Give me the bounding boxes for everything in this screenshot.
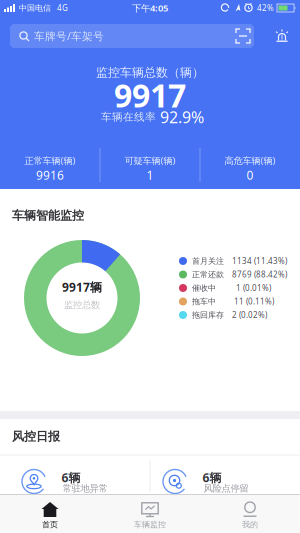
button[interactable]: 6辆 (0, 444, 150, 494)
staticText: 正常车辆(辆) (24, 154, 75, 167)
button[interactable]: 6辆 (150, 444, 300, 494)
staticText: 拖车中 (192, 297, 216, 306)
staticText: 高危车辆(辆) (224, 154, 275, 167)
button[interactable]: 车牌号/车架号 (10, 24, 254, 48)
staticText: 首页 (42, 520, 58, 529)
button[interactable]: 报警消息 (269, 24, 295, 48)
staticText: 车牌号/车架号 (34, 29, 104, 43)
button[interactable]: 扫一扫 (231, 24, 255, 48)
staticText: 1134 (11.43%) (232, 256, 287, 266)
staticText: 拖回库存 (192, 310, 224, 320)
staticText: 9916 (36, 167, 64, 183)
button[interactable]: 我的 (200, 494, 300, 533)
staticText: 下午4:05 (132, 2, 168, 14)
staticText: 1 (146, 167, 153, 183)
staticText: 4G (57, 3, 68, 13)
staticText: 车辆监控 (134, 520, 166, 529)
staticText: 1 (0.01%) (232, 283, 271, 293)
staticText: 正常还款 (192, 270, 224, 279)
staticText: 车辆在线率 (101, 110, 156, 123)
button[interactable]: 首页 (0, 494, 100, 533)
staticText: 中国电信 (19, 3, 51, 13)
staticText: 6辆 (202, 469, 221, 485)
staticText: 92.9% (160, 106, 204, 128)
staticText: 监控总数 (64, 299, 100, 311)
staticText: 9917 (114, 74, 186, 116)
staticText: 催收中 (192, 283, 216, 293)
staticText: 风控日报 (12, 429, 60, 444)
staticText: 车辆智能监控 (12, 208, 84, 223)
staticText: 42% (257, 3, 274, 13)
staticText: 可疑车辆(辆) (124, 154, 175, 167)
staticText: 风险点停留 (203, 483, 248, 494)
staticText: 0 (246, 167, 253, 183)
staticText: 6辆 (61, 469, 80, 485)
staticText: 2 (0.02%) (232, 310, 267, 320)
staticText: 首月关注 (192, 256, 224, 266)
staticText: 监控车辆总数（辆） (96, 65, 204, 80)
staticText: 11 (0.11%) (232, 296, 274, 307)
staticText: 8769 (88.42%) (232, 269, 287, 280)
staticText: 常驻地异常 (62, 483, 107, 494)
button[interactable]: 车辆监控 (100, 494, 200, 533)
staticText: 9917辆 (62, 279, 102, 295)
staticText: 我的 (242, 520, 258, 529)
